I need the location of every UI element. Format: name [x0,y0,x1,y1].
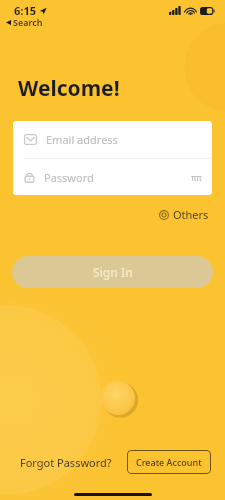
button[interactable]: Sign In [12,256,213,288]
staticText: Others [173,207,209,222]
staticText: Create Account [136,456,202,468]
staticText: Search [13,16,43,28]
button[interactable]: Password [13,159,212,195]
staticText: Password [44,170,94,185]
staticText: Sign In [93,264,133,280]
button[interactable]: Email address [13,121,212,158]
button[interactable]: Search [6,16,43,28]
button[interactable]: Create Account [127,450,211,474]
button[interactable]: Forgot Password? [20,451,112,474]
staticText: 6:15 [14,3,36,18]
staticText: Forgot Password? [20,455,112,470]
staticText: Email address [46,132,118,147]
button[interactable]: Others [157,205,211,224]
staticText: Welcome! [18,74,120,103]
staticText: ππ [191,172,202,183]
